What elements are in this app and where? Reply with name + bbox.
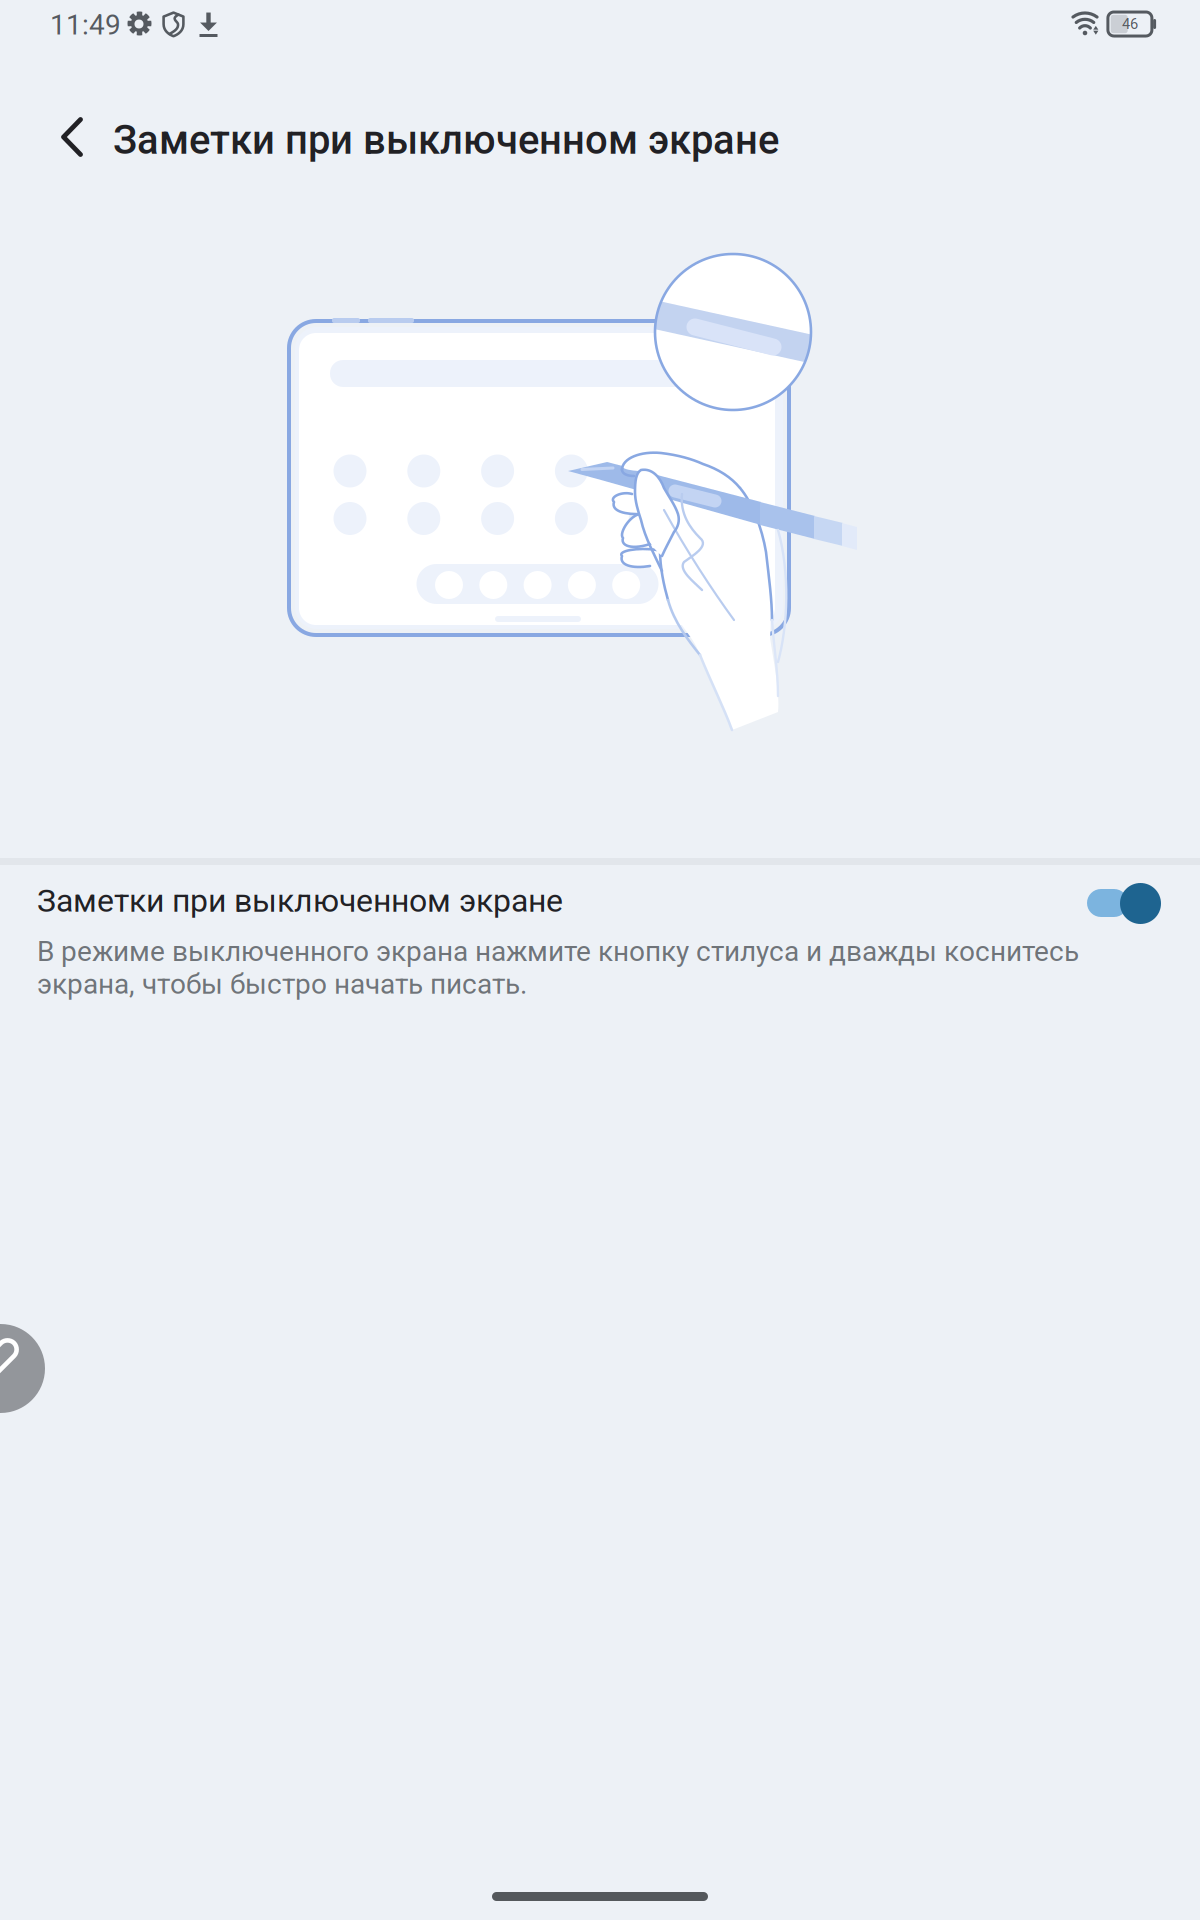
button[interactable]: Quick note [0, 1324, 45, 1413]
button[interactable]: Заметки при выключенном экране [0, 865, 1200, 1030]
staticText: Заметки при выключенном экране [37, 882, 563, 919]
staticText: Заметки при выключенном экране [113, 117, 779, 163]
button[interactable]: Back [33, 98, 111, 176]
staticText: 46 [1122, 15, 1138, 33]
staticText: 11:49 [50, 9, 121, 41]
staticText: В режиме выключенного экрана нажмите кно… [37, 935, 1079, 1001]
